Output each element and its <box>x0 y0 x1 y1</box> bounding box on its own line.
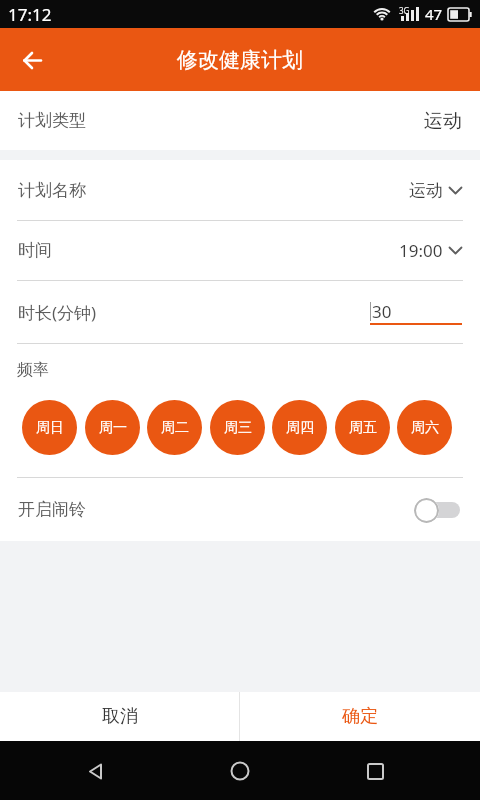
staticText: 计划类型 <box>18 110 86 131</box>
staticText: 周日 <box>36 419 64 437</box>
staticText: 计划名称 <box>18 180 86 201</box>
staticText: 周一 <box>99 419 127 437</box>
staticText: 周六 <box>411 419 439 437</box>
button[interactable] <box>353 749 397 793</box>
staticText: 周五 <box>349 419 377 437</box>
staticText: 周三 <box>224 419 252 437</box>
staticText: 时长(分钟) <box>18 301 97 324</box>
staticText: 47 <box>425 4 443 24</box>
button[interactable] <box>73 749 117 793</box>
button[interactable]: 计划类型 <box>0 91 480 150</box>
staticText: 3G <box>399 5 410 16</box>
button[interactable]: 周五 <box>335 400 390 455</box>
button[interactable]: 30 <box>370 300 462 325</box>
staticText: 30 <box>372 300 392 323</box>
button[interactable]: 计划名称 <box>0 160 480 220</box>
button[interactable]: 周日 <box>22 400 77 455</box>
button[interactable]: 周六 <box>397 400 452 455</box>
staticText: 频率 <box>17 360 49 380</box>
button[interactable]: 时间 <box>0 221 480 280</box>
staticText: 开启闹铃 <box>18 499 86 520</box>
staticText: 时间 <box>18 240 52 261</box>
button[interactable]: 周一 <box>85 400 140 455</box>
button[interactable]: 周二 <box>147 400 202 455</box>
staticText: 周二 <box>161 419 189 437</box>
button[interactable] <box>218 749 262 793</box>
button[interactable]: 取消 <box>0 692 239 741</box>
button[interactable]: 确定 <box>240 692 480 741</box>
staticText: 周四 <box>286 419 314 437</box>
button[interactable]: 周三 <box>210 400 265 455</box>
staticText: 17:12 <box>8 3 52 26</box>
staticText: 运动 <box>424 109 462 133</box>
staticText: 取消 <box>102 705 138 728</box>
button[interactable] <box>14 42 50 78</box>
staticText: 19:00 <box>399 239 443 262</box>
staticText: 修改健康计划 <box>177 47 303 73</box>
button[interactable]: 周四 <box>272 400 327 455</box>
button[interactable] <box>414 497 460 523</box>
staticText: 运动 <box>409 180 443 201</box>
staticText: 确定 <box>342 705 378 728</box>
